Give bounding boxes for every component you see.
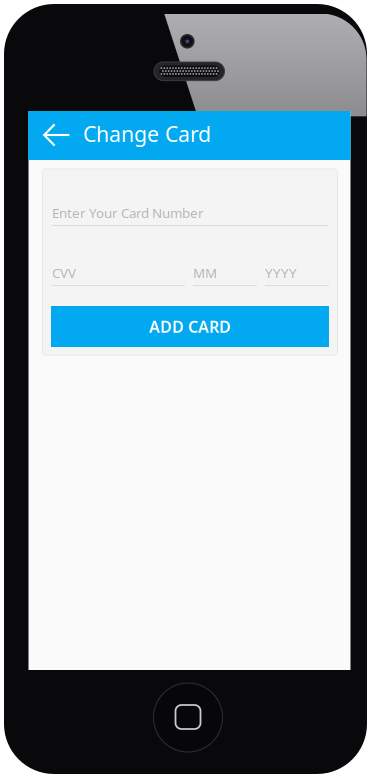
button[interactable]: YYYY [265,257,329,286]
staticText: CVV [52,264,76,282]
button[interactable]: CVV [52,257,185,286]
button[interactable]: MM [193,257,257,286]
staticText: YYYY [265,264,297,282]
button[interactable]: Home [153,683,222,752]
staticText: Change Card [83,119,211,148]
staticText: MM [193,264,217,282]
staticText: Enter Your Card Number [52,204,204,222]
button[interactable]: Back [28,111,74,160]
button[interactable]: Enter Your Card Number [52,197,328,226]
staticText: ADD CARD [149,316,231,337]
button[interactable]: ADD CARD [51,306,329,347]
